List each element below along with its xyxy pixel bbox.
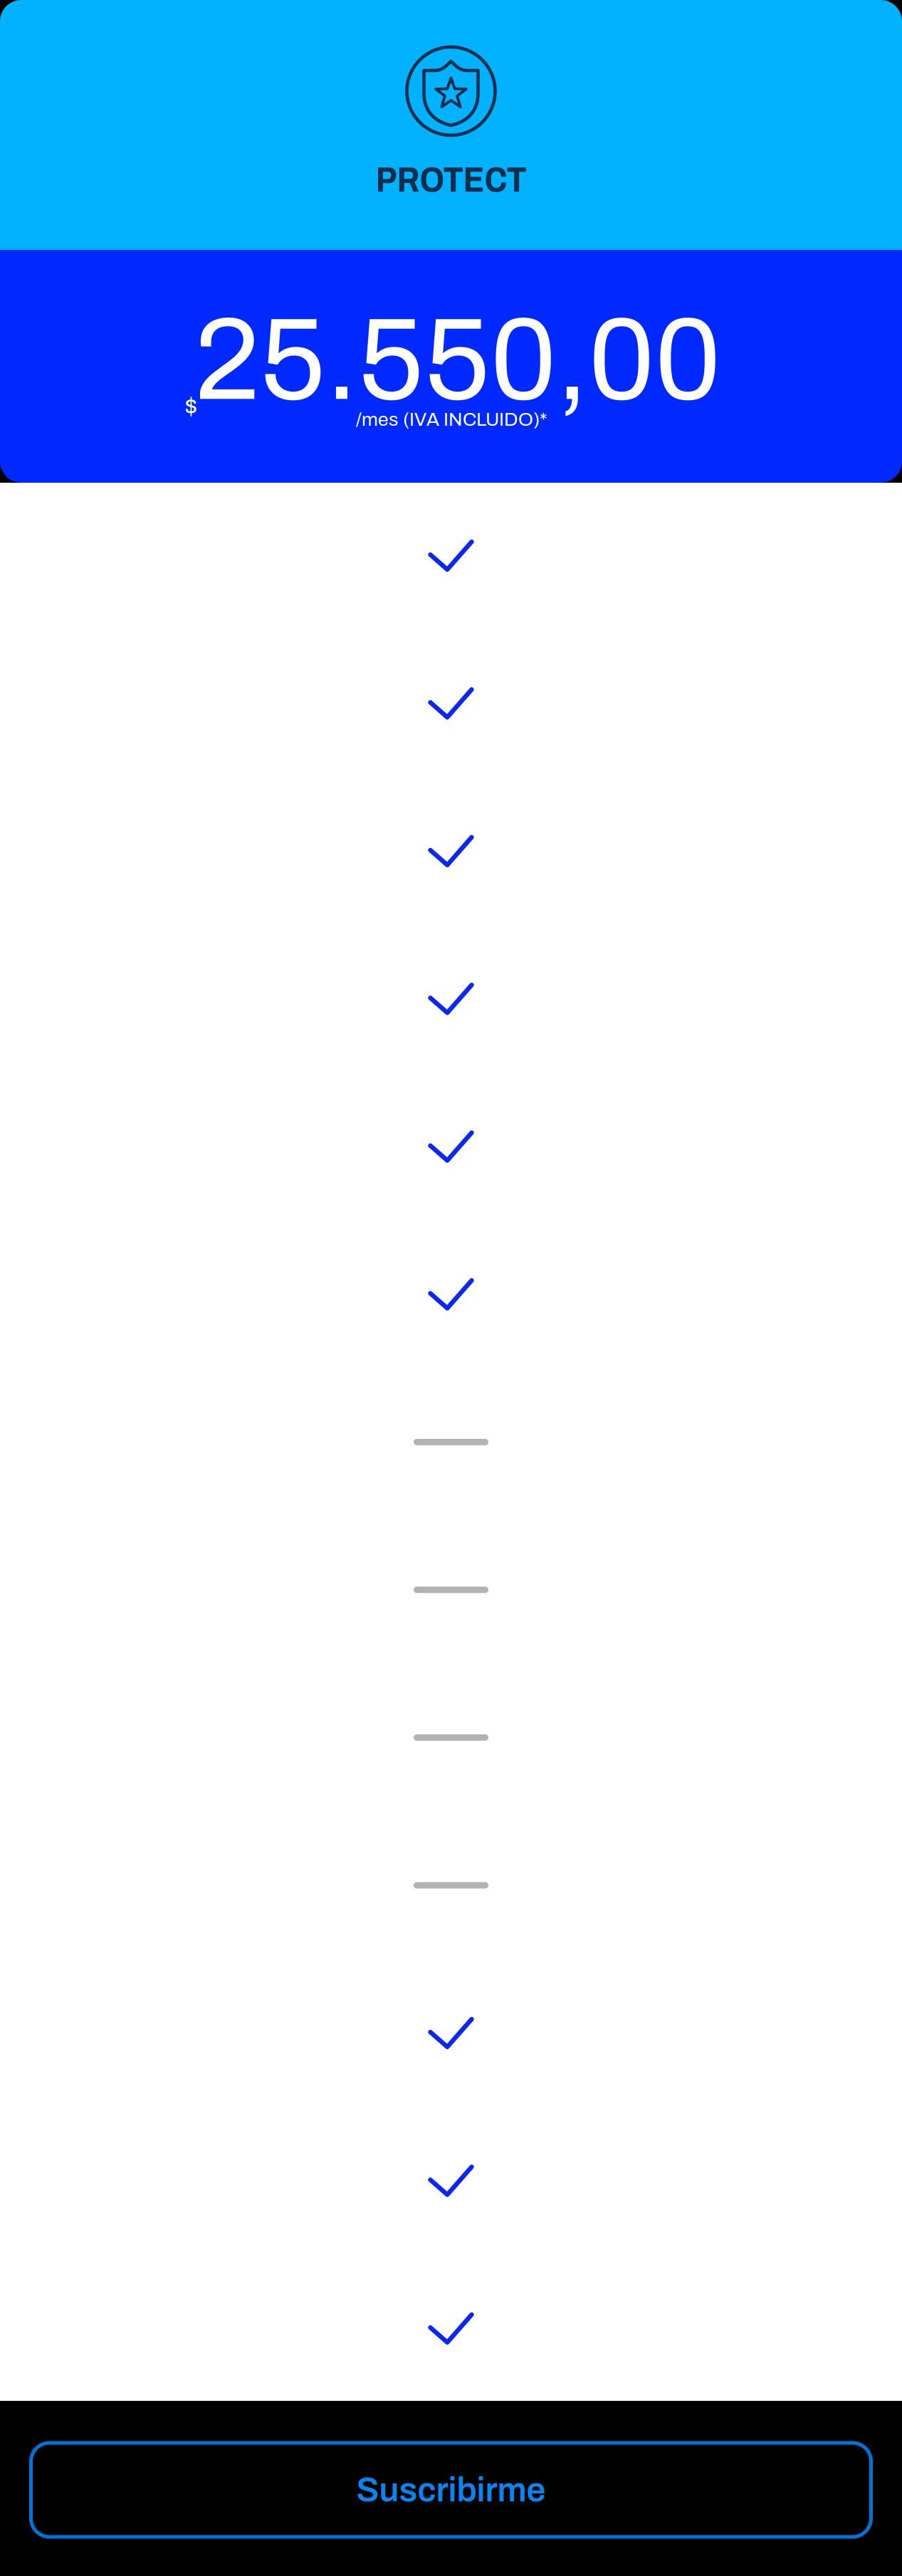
staticText: /mes (IVA INCLUIDO)* bbox=[356, 409, 547, 430]
staticText: PROTECT bbox=[376, 161, 526, 199]
staticText: Suscribirme bbox=[356, 2471, 546, 2508]
staticText: 25.550,00 bbox=[194, 297, 721, 423]
button[interactable]: Suscribirme bbox=[29, 2440, 873, 2537]
staticText: $ bbox=[185, 394, 198, 420]
